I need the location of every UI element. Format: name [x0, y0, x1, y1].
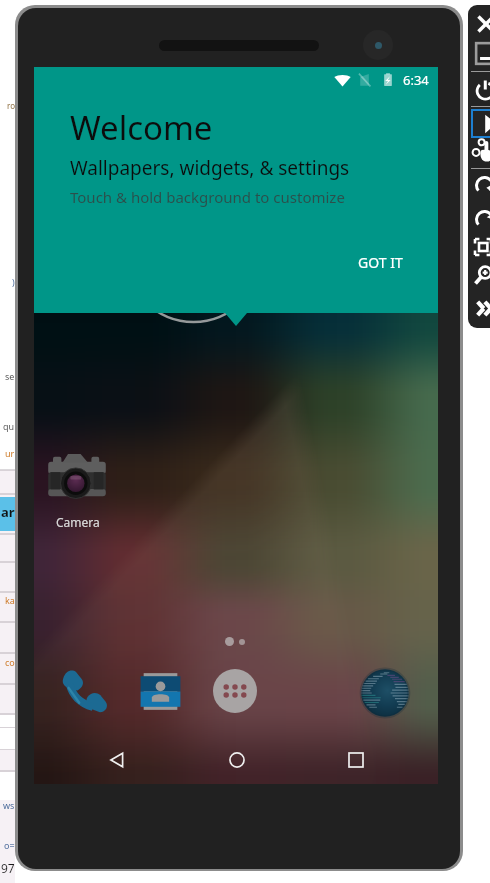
staticText: 97 — [1, 860, 15, 876]
staticText: ar — [1, 503, 15, 521]
button[interactable]: Pointer tool — [472, 110, 490, 137]
button[interactable]: GOT IT — [350, 247, 411, 278]
button[interactable]: Zoom in — [473, 265, 490, 286]
staticText: se — [5, 370, 15, 382]
button[interactable]: Power — [475, 79, 490, 100]
staticText: ro — [7, 100, 15, 111]
button[interactable]: Rotate left — [475, 176, 490, 195]
button[interactable]: Multi-touch — [472, 139, 490, 163]
button[interactable]: Take screenshot — [473, 237, 490, 257]
staticText: qu — [3, 420, 15, 432]
staticText: o= — [4, 839, 15, 851]
button[interactable]: Back — [95, 738, 139, 782]
staticText: co — [5, 656, 15, 668]
button[interactable]: Rotate right — [475, 210, 490, 229]
staticText: Welcome — [70, 105, 213, 150]
button[interactable]: More — [475, 299, 490, 318]
staticText: ) — [12, 276, 15, 288]
staticText: ws — [3, 799, 15, 811]
staticText: GOT IT — [358, 253, 403, 272]
button[interactable]: Recent apps — [334, 738, 378, 782]
button[interactable]: Close — [477, 15, 490, 33]
button[interactable]: Home — [215, 738, 259, 782]
staticText: Wallpapers, widgets, & settings — [70, 155, 350, 181]
staticText: ka — [5, 594, 15, 606]
staticText: ur — [5, 447, 15, 459]
staticText: Touch & hold background to customize — [70, 187, 345, 207]
staticText: 6:34 — [403, 71, 429, 89]
staticText: Camera — [56, 514, 100, 530]
button[interactable]: Minimize — [475, 42, 490, 65]
